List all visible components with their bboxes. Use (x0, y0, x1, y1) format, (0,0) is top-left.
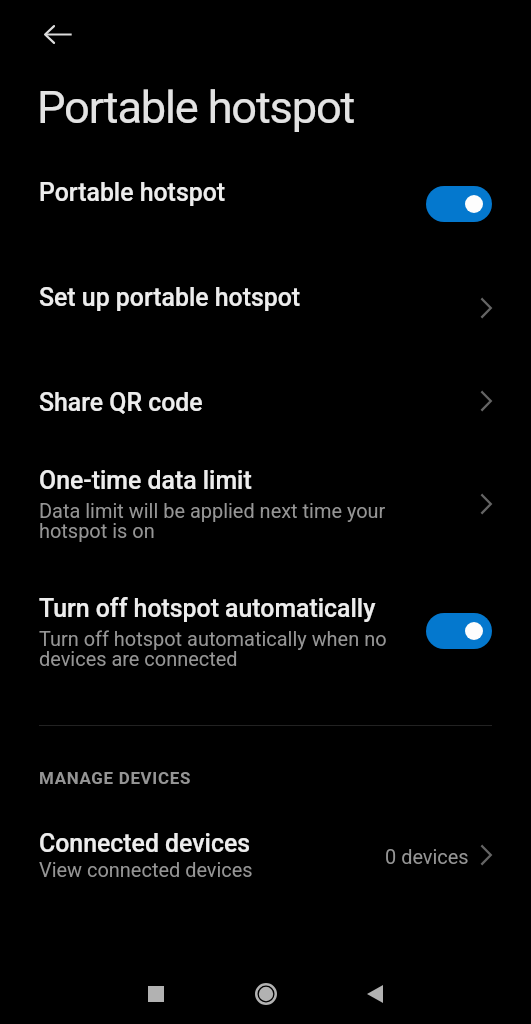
staticText: Portable hotspot (39, 178, 226, 207)
staticText: Set up portable hotspot (39, 283, 301, 312)
button[interactable]: Back (30, 7, 85, 62)
staticText: Portable hotspot (37, 81, 355, 134)
staticText: One-time data limit (39, 466, 252, 495)
staticText: View connected devices (39, 858, 253, 881)
staticText: Share QR code (39, 388, 203, 417)
button[interactable]: One-time data limit (0, 453, 531, 556)
button[interactable]: Portable hotspot (0, 161, 531, 223)
button[interactable]: Set up portable hotspot (0, 270, 531, 325)
staticText: 0 devices (385, 845, 469, 868)
button[interactable]: Home (238, 966, 293, 1021)
button[interactable]: Recents (128, 966, 183, 1021)
button[interactable]: Turn off hotspot automatically (0, 581, 531, 684)
staticText: Turn off hotspot automatically (39, 594, 376, 623)
button[interactable]: Toggle on (426, 613, 492, 649)
button[interactable]: Share QR code (0, 375, 531, 430)
button[interactable]: Back (347, 966, 402, 1021)
button[interactable]: Connected devices (0, 816, 531, 894)
staticText: Turn off hotspot automatically when no d… (39, 627, 393, 671)
button[interactable]: Toggle on (426, 186, 492, 222)
staticText: MANAGE DEVICES (39, 768, 192, 788)
staticText: Connected devices (39, 829, 251, 858)
staticText: Data limit will be applied next time you… (39, 499, 393, 543)
